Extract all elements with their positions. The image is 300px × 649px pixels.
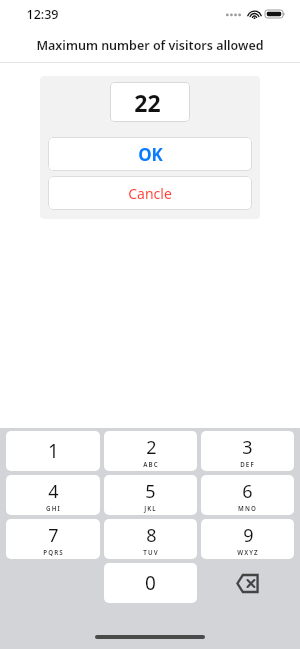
button[interactable]: 3 xyxy=(201,431,294,471)
button[interactable]: OK xyxy=(48,137,252,171)
staticText: PQRS xyxy=(43,548,64,556)
staticText: TUV xyxy=(143,548,159,556)
button[interactable]: 22 xyxy=(110,82,190,122)
staticText: 3 xyxy=(242,435,253,460)
staticText: GHI xyxy=(46,504,61,512)
button[interactable]: 8 xyxy=(104,519,197,559)
button[interactable]: 1 xyxy=(6,431,100,471)
button[interactable]: Backspace xyxy=(201,563,294,603)
staticText: MNO xyxy=(238,504,257,512)
staticText: 0 xyxy=(145,570,156,596)
staticText: ABC xyxy=(143,460,159,468)
staticText: Maximum number of visitors allowed xyxy=(36,37,264,54)
button[interactable]: 0 xyxy=(104,563,197,603)
staticText: 12:39 xyxy=(26,6,59,23)
staticText: JKL xyxy=(144,504,157,512)
button[interactable]: 9 xyxy=(201,519,294,559)
staticText: 5 xyxy=(145,479,156,504)
staticText: OK xyxy=(138,143,163,166)
staticText: 2 xyxy=(146,435,157,460)
staticText: 6 xyxy=(242,479,253,504)
button[interactable]: 5 xyxy=(104,475,197,515)
staticText: DEF xyxy=(240,460,255,468)
staticText: 9 xyxy=(243,523,254,548)
button[interactable]: 2 xyxy=(104,431,197,471)
staticText: 22 xyxy=(134,87,161,118)
button[interactable]: 6 xyxy=(201,475,294,515)
staticText: 7 xyxy=(48,523,59,548)
button[interactable]: 4 xyxy=(6,475,100,515)
button[interactable]: Cancle xyxy=(48,176,252,210)
staticText: Cancle xyxy=(128,184,172,203)
staticText: 1 xyxy=(48,438,59,464)
button[interactable]: 7 xyxy=(6,519,100,559)
staticText: WXYZ xyxy=(237,548,259,556)
staticText: 8 xyxy=(146,523,157,548)
staticText: 4 xyxy=(48,479,59,504)
